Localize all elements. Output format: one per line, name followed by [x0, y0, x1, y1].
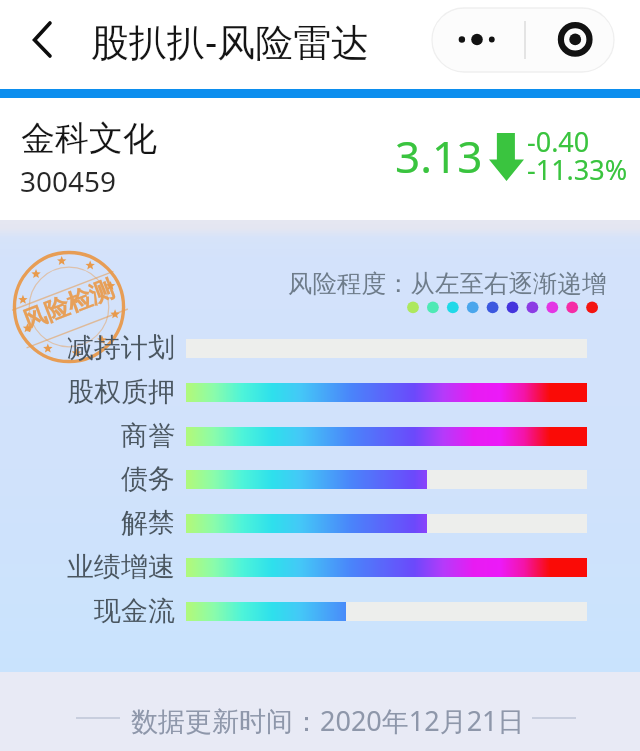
button[interactable]: Close mini program	[524, 8, 614, 72]
button[interactable]: 金科文化	[0, 98, 640, 220]
button[interactable]: 业绩增速	[0, 550, 175, 584]
staticText: 风险程度：从左至右逐渐递增	[288, 268, 607, 299]
staticText: 300459	[20, 162, 117, 200]
staticText: 风险检测	[18, 274, 118, 336]
button[interactable]: 商誉	[0, 419, 175, 453]
staticText: 股扒扒-风险雷达	[91, 15, 370, 67]
button[interactable]: 股权质押	[0, 375, 175, 409]
button[interactable]: 债务	[0, 462, 175, 496]
button[interactable]: Back	[18, 16, 70, 68]
button[interactable]: 解禁	[0, 506, 175, 540]
staticText: 金科文化	[21, 117, 157, 160]
staticText: -11.33%	[527, 151, 628, 188]
staticText: 3.13	[395, 126, 483, 186]
staticText: -0.40	[527, 123, 590, 160]
button[interactable]: More options	[432, 8, 524, 72]
button[interactable]: 减持计划	[0, 331, 175, 365]
button[interactable]: 现金流	[0, 594, 175, 628]
staticText: 数据更新时间：2020年12月21日	[131, 702, 525, 739]
